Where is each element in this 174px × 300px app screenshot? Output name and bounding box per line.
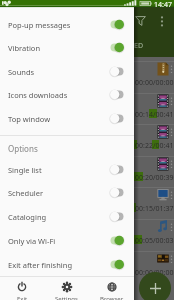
button[interactable]: Vibration	[0, 36, 134, 59]
button[interactable]: Pop-up messages	[0, 13, 134, 36]
button[interactable]: Only via Wi-Fi	[0, 229, 134, 252]
staticText: Top window	[8, 114, 51, 124]
staticText: Exit after finishing	[8, 260, 72, 270]
staticText: Settings	[55, 295, 78, 300]
staticText: 00:05/00:03	[135, 236, 174, 246]
button[interactable]: Sounds	[0, 60, 134, 83]
staticText: Only via Wi-Fi	[8, 236, 56, 246]
button[interactable]: Cataloging	[0, 205, 134, 228]
staticText: Single list	[8, 165, 42, 175]
staticText: Pop-up messages	[8, 20, 71, 30]
button[interactable]: Top window	[0, 107, 134, 130]
staticText: Vibration	[8, 43, 41, 53]
staticText: 14:47	[154, 0, 172, 7]
button[interactable]: Exit	[0, 277, 44, 300]
staticText: 00:00/00:00	[135, 78, 174, 88]
staticText: 00:00/00:00	[135, 268, 174, 278]
button[interactable]: Filter	[135, 16, 146, 26]
staticText: 00:20/00:39	[135, 173, 174, 183]
staticText: Sounds	[8, 67, 35, 77]
button[interactable]: 00:00/00:00	[134, 61, 174, 92]
staticText: ED	[134, 41, 144, 51]
button[interactable]: 00:15/01:37	[134, 187, 174, 218]
staticText: Exit	[17, 295, 28, 300]
staticText: Options	[8, 143, 38, 154]
staticText: 00:14/00:41	[135, 110, 174, 120]
button[interactable]: Add download	[139, 272, 171, 300]
staticText: Browser	[100, 295, 124, 300]
staticText: Cataloging	[8, 212, 47, 222]
button[interactable]: Settings	[44, 277, 89, 300]
button[interactable]: 00:22/00:41	[134, 124, 174, 155]
staticText: Scheduler	[8, 188, 44, 198]
staticText: 00:15/01:37	[135, 204, 174, 214]
staticText: Icons downloads	[8, 90, 68, 100]
button[interactable]: Single list	[0, 158, 134, 181]
button[interactable]: Exit after finishing	[0, 253, 134, 276]
button[interactable]: Icons downloads	[0, 83, 134, 106]
button[interactable]: 00:14/00:41	[134, 93, 174, 124]
button[interactable]: 00:05/00:03	[134, 219, 174, 250]
button[interactable]: 00:20/00:39	[134, 156, 174, 187]
button[interactable]: More options	[160, 16, 164, 27]
button[interactable]: Scheduler	[0, 181, 134, 204]
button[interactable]: 00:00/00:00	[134, 251, 174, 282]
button[interactable]: Browser	[89, 277, 134, 300]
staticText: 00:22/00:41	[135, 141, 174, 151]
